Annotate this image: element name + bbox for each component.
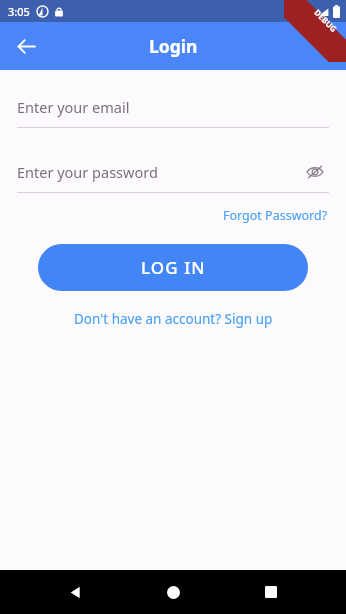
staticText: LOG IN — [141, 256, 206, 279]
staticText: DEBUG — [312, 7, 340, 34]
button[interactable]: Forgot Password? — [220, 204, 331, 227]
button[interactable]: Back — [52, 570, 98, 614]
staticText: Don't have an account? Sign up — [74, 310, 273, 328]
button[interactable]: Back — [6, 26, 46, 66]
button[interactable]: Home — [150, 570, 196, 614]
staticText: Enter your email — [17, 97, 130, 117]
staticText: Forgot Password? — [223, 207, 328, 224]
staticText: Enter your password — [17, 162, 158, 182]
button[interactable]: Don't have an account? Sign up — [70, 306, 277, 332]
staticText: 3:05 — [8, 4, 30, 19]
button[interactable]: LOG IN — [38, 244, 308, 291]
button[interactable]: Toggle password visibility — [301, 161, 329, 183]
staticText: Login — [149, 34, 198, 58]
button[interactable]: Recents — [248, 570, 294, 614]
